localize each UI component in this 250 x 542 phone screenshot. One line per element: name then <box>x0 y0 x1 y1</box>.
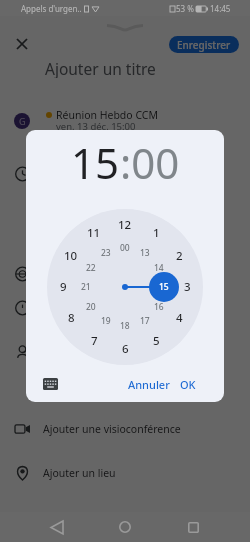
button[interactable]: Accueil <box>114 516 136 538</box>
staticText: Ajouter une visioconférence <box>43 422 181 436</box>
staticText: 14:45 <box>210 3 231 14</box>
staticText: Tous les jours <box>43 167 111 181</box>
staticText: 17 <box>140 315 150 327</box>
button[interactable]: Notification <box>0 301 250 315</box>
staticText: 53 % <box>176 3 194 14</box>
staticText: 22 <box>86 262 96 274</box>
staticText: 1 <box>153 225 160 241</box>
staticText: Inviter des personnes <box>43 267 151 281</box>
staticText: 11 <box>87 225 101 241</box>
staticText: 14 <box>154 262 164 274</box>
staticText: G <box>19 115 26 127</box>
button[interactable]: Annuler <box>124 373 174 396</box>
staticText: 16 <box>154 301 164 313</box>
staticText: :00 <box>120 134 180 191</box>
staticText: Ajouter un titre <box>45 58 156 78</box>
button[interactable]: Disponible <box>0 345 250 359</box>
staticText: 23 <box>101 247 111 259</box>
staticText: Notification <box>43 301 101 315</box>
staticText: OK <box>180 377 196 392</box>
staticText: Ajouter un lieu <box>43 466 116 480</box>
staticText: 20 <box>86 301 96 313</box>
staticText: 8 <box>68 310 75 326</box>
staticText: 19 <box>101 315 111 327</box>
staticText: 6 <box>122 341 129 357</box>
staticText: ven. 13 déc. 15:00 <box>56 120 136 133</box>
staticText: Annuler <box>128 377 170 392</box>
staticText: 13 <box>140 247 150 259</box>
staticText: 10 <box>64 248 78 264</box>
staticText: 2 <box>176 248 183 264</box>
staticText: 21 <box>81 281 91 293</box>
staticText: 7 <box>91 333 98 349</box>
button[interactable]: Saisie au clavier <box>41 375 59 393</box>
button[interactable]: Tous les jours <box>0 167 250 181</box>
button[interactable]: Applications récentes <box>182 516 204 538</box>
staticText: 12 <box>118 217 132 233</box>
staticText: 00 <box>120 242 130 254</box>
staticText: 5 <box>153 333 160 349</box>
staticText: 15 <box>71 134 120 191</box>
staticText: Appels d'urgen.. <box>21 3 82 14</box>
staticText: Disponible <box>43 345 96 359</box>
staticText: 4 <box>176 310 183 326</box>
button[interactable]: Inviter des personnes <box>0 267 250 281</box>
button[interactable]: Enregistrer <box>169 36 239 53</box>
staticText: 18 <box>120 320 130 332</box>
staticText: 15 <box>159 281 169 293</box>
button[interactable]: Fermer <box>10 32 34 56</box>
button[interactable]: OK <box>176 373 200 396</box>
button[interactable]: Ajouter une visioconférence <box>0 422 250 436</box>
staticText: 3 <box>184 279 191 295</box>
staticText: Enregistrer <box>177 38 231 52</box>
button[interactable]: Ajouter un lieu <box>0 466 250 480</box>
button[interactable]: Retour <box>46 516 68 538</box>
staticText: Réunion Hebdo CCM <box>56 108 158 122</box>
staticText: 9 <box>60 279 67 295</box>
